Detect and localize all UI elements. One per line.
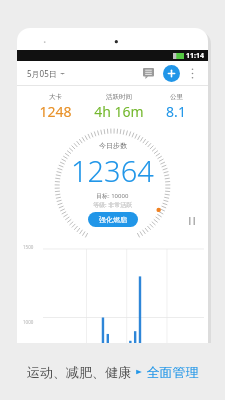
staticText: 8.1: [166, 102, 186, 121]
staticText: 运动、减肥、健康: [27, 363, 135, 381]
button[interactable]: 强化燃脂: [88, 212, 138, 227]
staticText: 5月05日: [27, 68, 57, 79]
staticText: 1248: [39, 102, 72, 121]
staticText: 4h 16m: [94, 102, 144, 121]
staticText: 等级: 非常活跃: [93, 201, 133, 209]
button[interactable]: Pause: [186, 215, 198, 227]
button[interactable]: Messages: [139, 64, 157, 82]
button[interactable]: Add: [163, 65, 180, 82]
staticText: 全面管理: [143, 363, 199, 381]
staticText: 今日步数: [99, 141, 127, 150]
staticText: 强化燃脂: [99, 215, 127, 224]
staticText: 11:14: [186, 51, 204, 61]
button[interactable]: More options: [184, 65, 200, 81]
staticText: 目标: 10000: [96, 192, 129, 200]
staticText: 1500: [23, 244, 34, 250]
staticText: 12364: [71, 151, 154, 190]
staticText: 公里: [170, 93, 183, 101]
staticText: 大卡: [49, 93, 62, 101]
staticText: 1000: [23, 319, 34, 325]
button[interactable]: 5月05日: [25, 66, 67, 81]
staticText: 活跃时间: [106, 93, 132, 101]
